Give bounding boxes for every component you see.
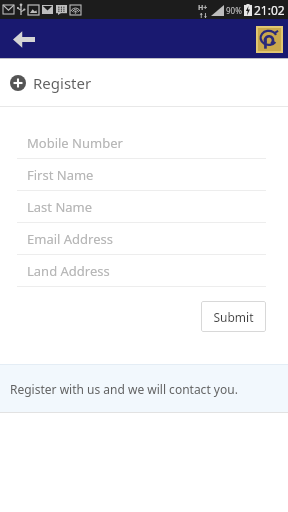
staticText: 21:02 (254, 2, 285, 18)
button[interactable]: Back (8, 23, 40, 55)
button[interactable]: First Name (0, 159, 288, 190)
button[interactable]: App logo (254, 24, 284, 54)
staticText: Submit (213, 309, 254, 325)
button[interactable]: Last Name (0, 191, 288, 222)
staticText: 90% (226, 5, 242, 16)
staticText: Mobile Number (27, 134, 123, 152)
button[interactable]: Email Address (0, 223, 288, 254)
staticText: First Name (27, 166, 94, 184)
button[interactable]: Register (0, 59, 288, 106)
staticText: Last Name (27, 198, 93, 216)
staticText: Land Address (27, 262, 110, 280)
staticText: Email Address (27, 230, 113, 248)
button[interactable]: Submit (201, 301, 266, 332)
button[interactable]: Mobile Number (0, 127, 288, 158)
button[interactable]: Land Address (0, 255, 288, 286)
button[interactable]: Register with us and we will contact you… (0, 365, 288, 412)
staticText: H+ (198, 3, 208, 13)
staticText: Register (33, 73, 92, 93)
staticText: Register with us and we will contact you… (10, 381, 238, 397)
